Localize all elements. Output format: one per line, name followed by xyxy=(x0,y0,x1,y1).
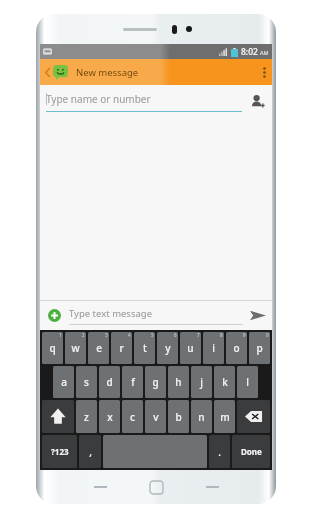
button[interactable]: v xyxy=(145,400,166,433)
button[interactable]: r xyxy=(111,332,132,364)
staticText: x xyxy=(107,410,113,424)
button[interactable]: b xyxy=(168,400,189,433)
staticText: Done xyxy=(241,446,262,457)
button[interactable]: a xyxy=(53,366,74,398)
staticText: c xyxy=(130,410,135,424)
staticText: ?123 xyxy=(51,446,69,457)
staticText: t xyxy=(143,341,147,355)
staticText: k xyxy=(222,375,228,389)
staticText: l xyxy=(246,375,249,389)
button[interactable]: Home xyxy=(150,481,163,494)
staticText: v xyxy=(153,410,159,424)
staticText: d xyxy=(106,375,113,389)
staticText: 2 xyxy=(82,332,85,338)
staticText: r xyxy=(119,341,124,355)
button[interactable]: Type text message xyxy=(69,300,243,330)
staticText: 5 xyxy=(151,332,154,338)
staticText: Type name or number xyxy=(46,92,151,106)
button[interactable]: , xyxy=(79,435,101,468)
staticText: n xyxy=(198,410,205,424)
button[interactable]: g xyxy=(145,366,166,398)
button[interactable]: q xyxy=(42,332,63,364)
staticText: s xyxy=(84,375,89,389)
button[interactable]: h xyxy=(168,366,189,398)
button[interactable]: l xyxy=(237,366,258,398)
button[interactable]: Backspace xyxy=(237,400,270,433)
staticText: Type text message xyxy=(69,307,153,320)
button[interactable]: e xyxy=(88,332,109,364)
staticText: AM xyxy=(260,49,269,56)
staticText: 1 xyxy=(59,332,62,338)
staticText: p xyxy=(256,341,263,355)
button[interactable]: s xyxy=(76,366,97,398)
button[interactable]: x xyxy=(99,400,120,433)
button[interactable]: Done xyxy=(232,435,270,468)
button[interactable]: o xyxy=(226,332,247,364)
staticText: y xyxy=(165,341,171,355)
staticText: z xyxy=(84,410,89,424)
staticText: New message xyxy=(76,66,139,79)
button[interactable]: n xyxy=(191,400,212,433)
staticText: a xyxy=(61,375,67,389)
button[interactable]: f xyxy=(122,366,143,398)
button[interactable]: . xyxy=(209,435,230,468)
staticText: . xyxy=(218,445,221,459)
staticText: j xyxy=(200,375,203,389)
button[interactable]: u xyxy=(180,332,201,364)
button[interactable]: i xyxy=(203,332,224,364)
button[interactable]: Type name or number xyxy=(46,85,242,117)
button[interactable]: d xyxy=(99,366,120,398)
staticText: i xyxy=(212,341,215,355)
staticText: , xyxy=(89,445,92,459)
button[interactable]: z xyxy=(76,400,97,433)
button[interactable]: k xyxy=(214,366,235,398)
staticText: w xyxy=(71,341,80,355)
staticText: u xyxy=(187,341,194,355)
button[interactable]: ?123 xyxy=(42,435,77,468)
button[interactable]: t xyxy=(134,332,155,364)
button[interactable]: w xyxy=(65,332,86,364)
button[interactable]: j xyxy=(191,366,212,398)
button[interactable]: Add attachment xyxy=(45,306,63,324)
staticText: q xyxy=(49,341,56,355)
staticText: 6 xyxy=(174,332,177,338)
button[interactable]: m xyxy=(214,400,235,433)
button[interactable]: Navigate up xyxy=(43,59,70,85)
staticText: f xyxy=(131,375,135,389)
staticText: 7 xyxy=(197,332,200,338)
staticText: 8:02 xyxy=(241,46,258,58)
button[interactable]: p xyxy=(249,332,270,364)
button[interactable]: c xyxy=(122,400,143,433)
staticText: o xyxy=(233,341,240,355)
button[interactable]: Send message xyxy=(247,304,269,326)
staticText: 3 xyxy=(105,332,108,338)
staticText: 4 xyxy=(128,332,131,338)
button[interactable]: More options xyxy=(256,59,272,85)
staticText: 9 xyxy=(243,332,246,338)
staticText: b xyxy=(175,410,182,424)
button[interactable]: Shift xyxy=(42,400,74,433)
staticText: m xyxy=(220,410,230,424)
staticText: h xyxy=(175,375,182,389)
staticText: 0 xyxy=(266,332,269,338)
staticText: e xyxy=(96,341,102,355)
button[interactable]: Add recipient from contacts xyxy=(246,90,268,112)
staticText: 8 xyxy=(220,332,223,338)
button[interactable]: y xyxy=(157,332,178,364)
staticText: g xyxy=(152,375,159,389)
